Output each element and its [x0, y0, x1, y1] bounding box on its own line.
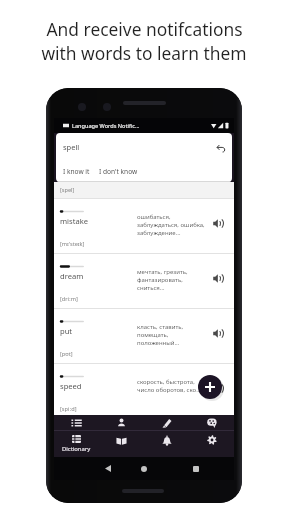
button[interactable]: Reply	[215, 142, 226, 153]
staticText: mistake	[60, 216, 89, 226]
staticText: I know it	[63, 167, 90, 176]
button[interactable]: Pronounce	[213, 218, 224, 229]
button[interactable]: Learn	[99, 430, 144, 457]
staticText: класть, ставить,	[137, 323, 184, 331]
button[interactable]: I don't know	[99, 164, 138, 179]
staticText: Dictionary	[62, 445, 91, 453]
button[interactable]: put	[54, 309, 234, 363]
staticText: [mɪ'steɪk]	[60, 240, 85, 248]
button[interactable]: dream	[54, 254, 234, 308]
button[interactable]: Pronounce	[213, 383, 224, 394]
staticText: фантазировать,	[137, 276, 183, 284]
button[interactable]: Profile	[99, 415, 144, 430]
staticText: заблуждаться, ошибка,	[137, 221, 205, 229]
button[interactable]: mistake	[54, 199, 234, 253]
staticText: dream	[60, 271, 84, 281]
button[interactable]: I know it	[63, 164, 90, 179]
staticText: скорость, быстрота,	[137, 378, 195, 386]
button[interactable]: Pronounce	[213, 273, 224, 284]
button[interactable]: Back	[97, 457, 119, 480]
staticText: [spel]	[60, 186, 75, 194]
staticText: And receive notifcations	[46, 17, 243, 41]
staticText: мечтать, грезить,	[137, 268, 188, 276]
staticText: [driːm]	[60, 295, 78, 303]
staticText: заблуждение…	[137, 229, 181, 237]
staticText: Language Words Notific…	[72, 122, 140, 130]
button[interactable]: Dictionary	[54, 430, 99, 457]
button[interactable]: Recent apps	[185, 457, 207, 480]
button[interactable]: Words list	[54, 415, 99, 430]
staticText: ошибаться,	[137, 213, 171, 221]
staticText: число оборотов, ско…	[137, 386, 201, 394]
staticText: помещать,	[137, 331, 169, 339]
button[interactable]: Chat	[189, 415, 234, 430]
button[interactable]: speed	[54, 364, 234, 415]
button[interactable]: Add word	[198, 375, 222, 399]
button[interactable]: Practice	[144, 415, 189, 430]
button[interactable]: Settings	[189, 430, 234, 457]
staticText: put	[60, 326, 73, 336]
staticText: [spiːd]	[60, 405, 77, 413]
button[interactable]: Notifications	[144, 430, 189, 457]
staticText: [pʊt]	[60, 350, 73, 358]
staticText: сниться…	[137, 284, 165, 292]
staticText: положенный…	[137, 339, 180, 347]
staticText: spell	[63, 142, 80, 152]
staticText: speed	[60, 381, 82, 391]
button[interactable]: Home	[133, 457, 155, 480]
staticText: with words to learn them	[41, 41, 247, 65]
staticText: I don't know	[99, 167, 138, 176]
button[interactable]: Pronounce	[213, 328, 224, 339]
